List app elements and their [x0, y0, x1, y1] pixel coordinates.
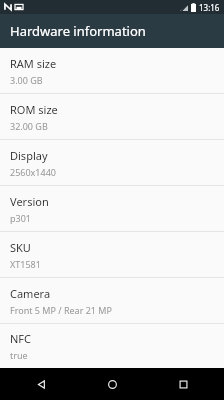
- staticText: Display: [10, 148, 48, 163]
- button[interactable]: SKU: [0, 232, 224, 277]
- staticText: Camera: [10, 286, 51, 301]
- button[interactable]: Version: [0, 186, 224, 231]
- staticText: NFC: [10, 331, 32, 346]
- button[interactable]: Camera: [0, 278, 224, 323]
- staticText: Front 5 MP / Rear 21 MP: [10, 304, 112, 316]
- staticText: RAM size: [10, 56, 57, 71]
- staticText: ROM size: [10, 102, 58, 117]
- staticText: Hardware information: [10, 22, 146, 40]
- staticText: SKU: [10, 240, 31, 255]
- button[interactable]: NFC: [0, 324, 224, 368]
- button[interactable]: RAM size: [0, 48, 224, 93]
- button[interactable]: ROM size: [0, 94, 224, 139]
- button[interactable]: Recent apps: [153, 368, 213, 400]
- staticText: 13:16: [199, 2, 220, 13]
- staticText: 32.00 GB: [10, 120, 48, 132]
- staticText: p301: [10, 212, 31, 224]
- staticText: 3.00 GB: [10, 74, 43, 86]
- staticText: true: [10, 349, 28, 361]
- staticText: Version: [10, 194, 49, 209]
- staticText: 2560x1440: [10, 166, 56, 178]
- button[interactable]: Home: [82, 368, 142, 400]
- button[interactable]: Back: [11, 368, 71, 400]
- staticText: XT1581: [10, 258, 41, 270]
- button[interactable]: Display: [0, 140, 224, 185]
